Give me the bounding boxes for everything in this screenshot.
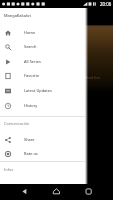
staticText: Latest Updates <box>24 88 52 93</box>
staticText: Infos <box>4 167 14 172</box>
staticText: All Series <box>24 59 41 64</box>
button[interactable]: Home <box>0 25 85 40</box>
staticText: History <box>24 103 38 108</box>
button[interactable]: Search <box>0 39 85 54</box>
staticText: Comunicación <box>4 121 30 126</box>
button[interactable]: History <box>0 98 85 113</box>
button[interactable]: Latest Updates <box>0 83 85 98</box>
staticText: Share <box>24 137 35 142</box>
staticText: Home <box>24 30 36 35</box>
staticText: Favorite <box>24 73 40 78</box>
staticText: Rate us <box>24 151 38 156</box>
staticText: Read free <box>85 75 101 80</box>
button[interactable]: All Series <box>0 54 85 69</box>
button[interactable]: Rate us <box>0 146 85 161</box>
button[interactable]: Favorite <box>0 68 85 83</box>
staticText: Search <box>24 44 37 49</box>
staticText: 20:06 <box>100 1 112 7</box>
staticText: MangaKakalot <box>4 13 31 18</box>
button[interactable]: Share <box>0 132 85 147</box>
